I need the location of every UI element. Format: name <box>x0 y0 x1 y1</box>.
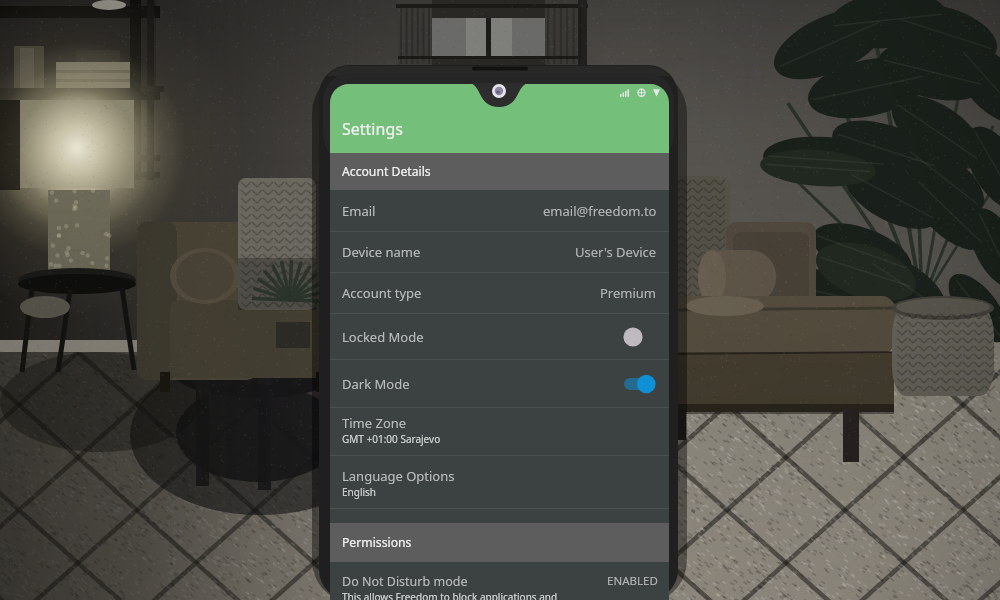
staticText: Language Options <box>342 467 455 485</box>
staticText: Account type <box>342 284 422 302</box>
staticText: Account Details <box>342 163 431 180</box>
button[interactable]: Time Zone <box>330 408 669 456</box>
staticText: Do Not Disturb mode <box>342 573 468 590</box>
staticText: English <box>342 485 377 499</box>
staticText: Locked Mode <box>342 328 424 346</box>
staticText: email@freedom.to <box>543 202 657 220</box>
staticText: Settings <box>342 118 403 140</box>
staticText: Premium <box>600 284 657 302</box>
staticText: Time Zone <box>342 414 407 432</box>
staticText: ENABLED <box>607 573 658 589</box>
staticText: This allows Freedom to block application… <box>342 590 558 600</box>
staticText: Permissions <box>342 534 412 551</box>
button[interactable]: Device name <box>330 232 669 273</box>
button[interactable]: Locked Mode <box>330 314 669 360</box>
staticText: Device name <box>342 243 421 261</box>
button[interactable]: Dark Mode <box>330 360 669 408</box>
staticText: Email <box>342 202 376 220</box>
button[interactable]: Do Not Disturb mode <box>330 562 669 600</box>
button[interactable]: Account Details <box>330 153 669 190</box>
button[interactable]: Account type <box>330 273 669 314</box>
staticText: GMT +01:00 Sarajevo <box>342 432 441 446</box>
button[interactable]: Email <box>330 190 669 232</box>
button[interactable]: Permissions <box>330 523 669 562</box>
button[interactable]: Language Options <box>330 456 669 509</box>
staticText: User's Device <box>575 243 657 261</box>
staticText: Dark Mode <box>342 375 410 393</box>
